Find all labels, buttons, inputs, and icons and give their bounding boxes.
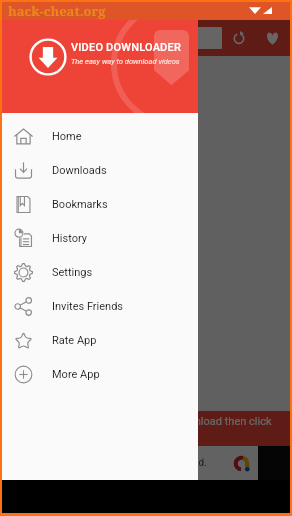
staticText: Settings: [52, 266, 93, 279]
button[interactable]: Enter URL or search..: [38, 27, 222, 49]
staticText: More App: [52, 368, 100, 381]
button[interactable]: Favourites: [261, 27, 283, 49]
staticText: hack-cheat.org: [8, 2, 106, 20]
button[interactable]: More App: [2, 357, 198, 391]
staticText: History: [52, 232, 87, 245]
button[interactable]: Invites Friends: [2, 289, 198, 323]
staticText: Home: [52, 130, 82, 143]
button[interactable]: Downloads: [2, 153, 198, 187]
staticText: Downloads: [52, 164, 107, 177]
staticText: Ad.: [192, 457, 207, 469]
button[interactable]: Home: [2, 119, 198, 153]
staticText: Rate App: [52, 334, 97, 347]
staticText: The easy way to download videos: [71, 57, 180, 66]
button[interactable]: Bookmarks: [2, 187, 198, 221]
button[interactable]: Refresh: [228, 27, 250, 49]
staticText: Invites Friends: [52, 300, 124, 313]
staticText: Play the video you want to download then…: [44, 415, 272, 428]
button[interactable]: Open navigation drawer: [10, 27, 32, 49]
button[interactable]: Rate App: [2, 323, 198, 357]
staticText: VIDEO DOWNLOADER: [71, 41, 182, 54]
button[interactable]: Ad.: [2, 446, 258, 480]
staticText: Bookmarks: [52, 198, 108, 211]
staticText: Enter URL or search..: [43, 33, 127, 44]
button[interactable]: History: [2, 221, 198, 255]
button[interactable]: Settings: [2, 255, 198, 289]
